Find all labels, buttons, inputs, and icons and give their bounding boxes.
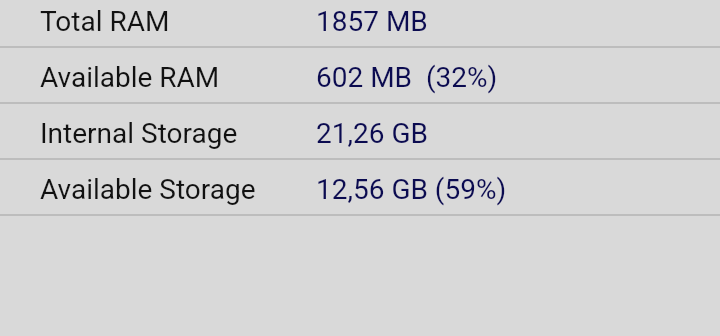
staticText: 1857 MB [316,5,428,38]
button[interactable]: Available RAM [0,47,720,103]
staticText: 602 MB (32%) [316,61,498,94]
staticText: Internal Storage [40,117,238,150]
staticText: 12,56 GB (59%) [316,173,507,206]
button[interactable]: Total RAM [0,0,720,47]
staticText: Available Storage [40,173,256,206]
button[interactable]: Internal Storage [0,103,720,159]
staticText: Total RAM [40,5,170,38]
button[interactable]: Available Storage [0,159,720,215]
staticText: 21,26 GB [316,117,428,150]
staticText: Available RAM [40,61,220,94]
